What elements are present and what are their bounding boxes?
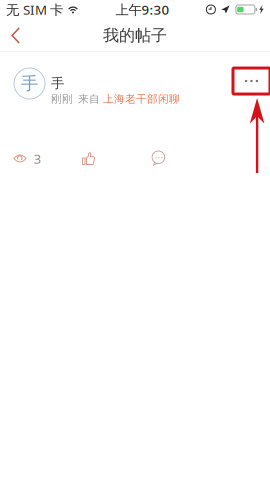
staticText: 来自: [78, 92, 100, 105]
button[interactable]: Comment: [151, 147, 211, 169]
staticText: 手: [21, 73, 38, 94]
button[interactable]: Like: [81, 147, 151, 169]
staticText: 手: [51, 75, 64, 91]
staticText: 3: [33, 150, 41, 167]
button[interactable]: Back: [0, 19, 34, 52]
staticText: 刚刚: [51, 92, 73, 105]
staticText: 上午9:30: [115, 1, 169, 18]
staticText: 上海老干部闲聊: [103, 92, 180, 105]
staticText: 无 SIM 卡: [6, 1, 63, 18]
button[interactable]: More options: [233, 68, 270, 94]
button[interactable]: Views: [13, 147, 81, 169]
staticText: 我的帖子: [103, 26, 167, 45]
